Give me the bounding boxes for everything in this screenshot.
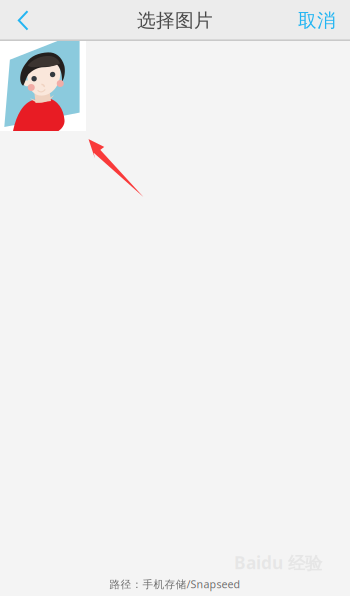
button[interactable]: Back: [0, 0, 46, 41]
staticText: 选择图片: [137, 9, 213, 32]
staticText: 取消: [298, 9, 336, 32]
staticText: Baidu 经验: [234, 551, 322, 574]
button[interactable]: Photo thumbnail: [0, 41, 86, 131]
button[interactable]: 取消: [284, 0, 350, 41]
staticText: jingyan.baidu.com: [237, 574, 319, 586]
staticText: 路径：手机存储/Snapseed: [109, 577, 240, 591]
